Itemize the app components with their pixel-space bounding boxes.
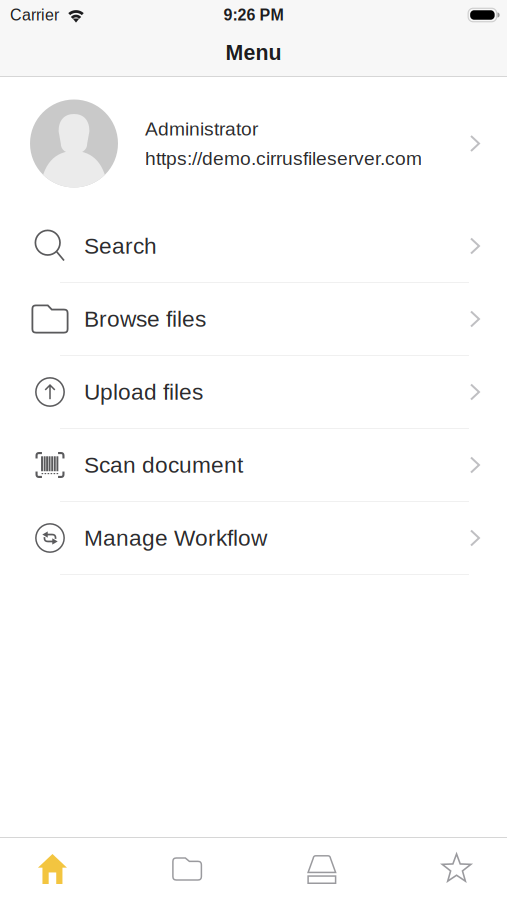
staticText: https://demo.cirrusfileserver.com [145,147,422,169]
staticText: Browse files [84,306,206,332]
staticText: Menu [225,41,281,64]
button[interactable]: Favorites [389,838,507,899]
button[interactable]: Administrator [0,77,507,210]
staticText: Upload files [84,379,203,405]
button[interactable]: Browse files [0,283,507,356]
button[interactable]: Search [0,210,507,283]
button[interactable]: Home [0,838,120,899]
button[interactable]: Upload files [0,356,507,429]
button[interactable]: Scan document [0,429,507,502]
staticText: Administrator [145,118,258,139]
button[interactable]: Transfers [254,838,389,899]
staticText: Search [84,233,157,259]
button[interactable]: Files [120,838,254,899]
staticText: 9:26 PM [223,6,283,24]
staticText: Carrier [10,6,59,24]
staticText: Manage Workflow [84,525,267,551]
button[interactable]: Manage Workflow [0,502,507,575]
staticText: Scan document [84,452,243,478]
